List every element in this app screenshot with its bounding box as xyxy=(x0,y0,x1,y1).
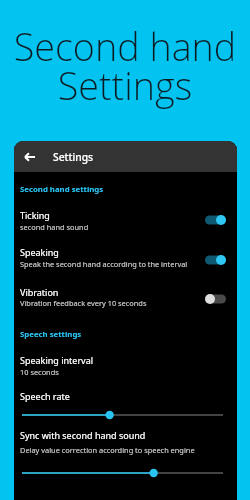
staticText: Ticking xyxy=(20,209,50,221)
staticText: Speech settings xyxy=(20,329,82,340)
button[interactable]: Slider xyxy=(16,466,229,480)
staticText: 10 seconds xyxy=(20,367,59,377)
staticText: Second hand Settings xyxy=(0,21,250,111)
staticText: Second hand settings xyxy=(20,184,104,195)
staticText: second hand sound xyxy=(20,222,89,232)
button[interactable]: Switch on xyxy=(196,209,234,231)
button[interactable] xyxy=(14,141,237,172)
staticText: Sync with second hand sound xyxy=(20,429,146,441)
staticText: Speech rate xyxy=(20,390,70,402)
staticText: Speaking xyxy=(20,246,59,258)
staticText: Vibration feedback every 10 seconds xyxy=(20,298,147,308)
button[interactable]: Back xyxy=(15,141,43,172)
button[interactable]: Switch on xyxy=(196,249,234,271)
staticText: Speaking interval xyxy=(20,354,94,366)
staticText: Speak the second hand according to the i… xyxy=(20,259,188,269)
staticText: Settings xyxy=(53,150,94,164)
staticText: Delay value correction according to spee… xyxy=(20,445,195,455)
button[interactable]: Slider xyxy=(16,408,229,422)
button[interactable]: Switch off xyxy=(196,288,234,310)
staticText: Vibration xyxy=(20,286,59,298)
